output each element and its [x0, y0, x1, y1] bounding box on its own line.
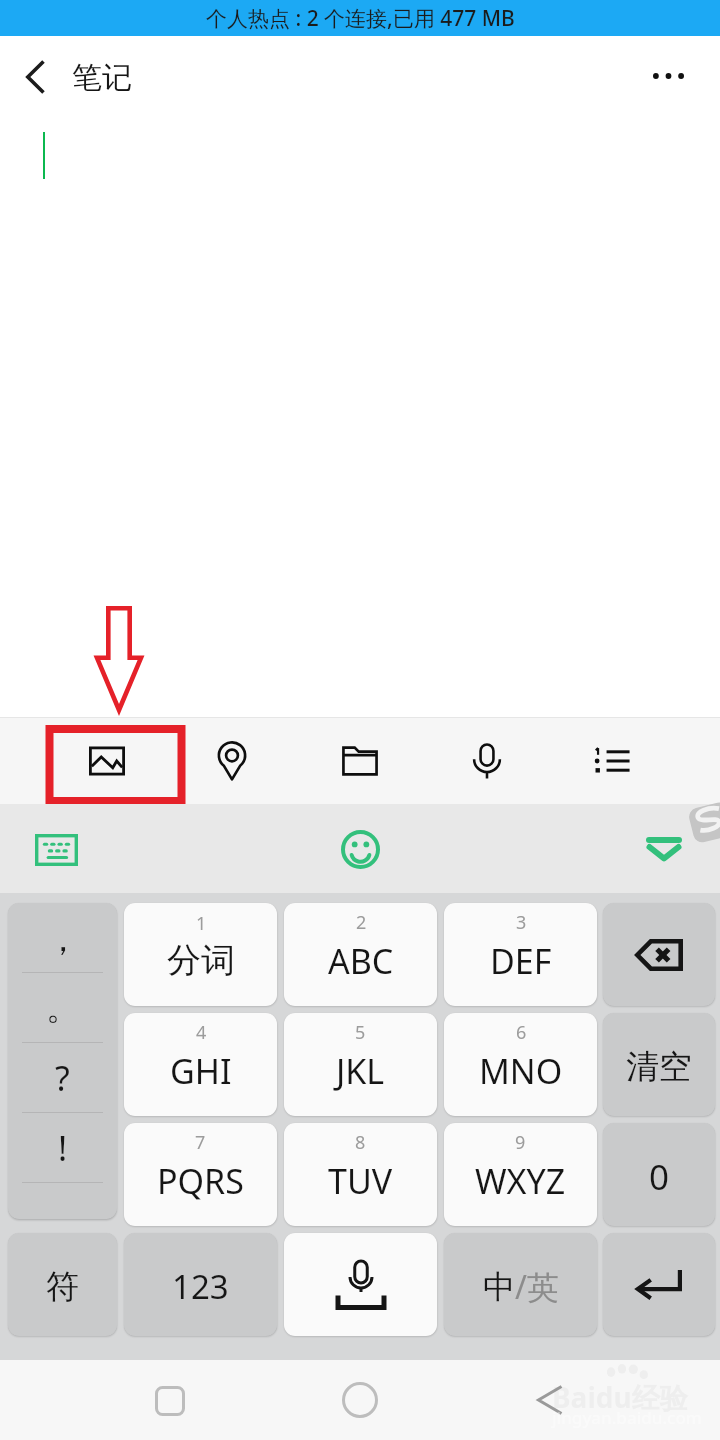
staticText: DEF — [490, 938, 552, 984]
staticText: 个人热点 : 2 个连接,已用 477 MB — [206, 4, 515, 33]
staticText: 2 — [356, 910, 367, 935]
button[interactable]: 123 — [124, 1233, 277, 1336]
button[interactable]: More options — [616, 36, 720, 117]
button[interactable]: Emoji — [310, 804, 410, 893]
button[interactable]: 9 — [444, 1123, 597, 1226]
button[interactable]: 中 — [444, 1233, 597, 1336]
staticText: 中 — [483, 1267, 515, 1307]
staticText: 7 — [195, 1130, 206, 1155]
staticText: jingyan.baidu.com — [552, 1406, 702, 1429]
staticText: 123 — [172, 1264, 229, 1309]
button[interactable]: 7 — [124, 1123, 277, 1226]
button[interactable]: Space — [284, 1233, 437, 1336]
staticText: Baidu经验 — [552, 1378, 688, 1416]
button[interactable]: Back — [491, 1360, 611, 1440]
staticText: 8 — [355, 1130, 366, 1155]
staticText: 符 — [46, 1266, 79, 1308]
staticText: /英 — [515, 1265, 559, 1309]
button[interactable]: Home — [300, 1360, 420, 1440]
staticText: 。 — [46, 986, 80, 1029]
staticText: ， — [46, 918, 80, 961]
staticText: 笔记 — [72, 59, 132, 97]
staticText: ? — [55, 1055, 70, 1101]
button[interactable]: ， — [8, 903, 117, 1219]
staticText: ! — [58, 1125, 68, 1171]
staticText: 4 — [196, 1020, 207, 1045]
button[interactable]: 6 — [444, 1013, 597, 1116]
staticText: ABC — [328, 938, 394, 984]
staticText: 5 — [355, 1020, 366, 1045]
button[interactable]: 1 — [124, 903, 277, 1006]
button[interactable]: 8 — [284, 1123, 437, 1226]
staticText: TUV — [328, 1158, 393, 1204]
button[interactable]: Location — [176, 717, 288, 804]
button[interactable]: Enter — [603, 1233, 715, 1336]
staticText: WXYZ — [475, 1158, 566, 1204]
button[interactable]: Insert image — [59, 717, 171, 804]
staticText: 清空 — [626, 1046, 692, 1088]
button[interactable]: 2 — [284, 903, 437, 1006]
button[interactable]: Bullet list — [557, 717, 669, 804]
button[interactable]: 4 — [124, 1013, 277, 1116]
staticText: 0 — [649, 1153, 670, 1201]
button[interactable]: 清空 — [603, 1013, 715, 1116]
button[interactable]: 3 — [444, 903, 597, 1006]
staticText: 1 — [196, 911, 207, 936]
button[interactable]: 符 — [8, 1233, 117, 1336]
staticText: PQRS — [157, 1158, 244, 1204]
button[interactable]: Voice input — [431, 717, 543, 804]
button[interactable]: Hide keyboard — [614, 804, 714, 893]
button[interactable]: Back — [0, 36, 70, 117]
staticText: JKL — [336, 1048, 385, 1094]
staticText: 9 — [515, 1130, 526, 1155]
staticText: 6 — [516, 1020, 527, 1045]
button[interactable]: Keyboard layout — [6, 804, 106, 893]
button[interactable]: 5 — [284, 1013, 437, 1116]
button[interactable]: Files — [304, 717, 416, 804]
button[interactable]: Backspace — [603, 903, 715, 1006]
staticText: 分词 — [167, 939, 235, 982]
button[interactable]: 0 — [603, 1123, 715, 1226]
staticText: 3 — [516, 910, 527, 935]
button[interactable]: Recents — [110, 1360, 230, 1440]
staticText: GHI — [170, 1048, 232, 1094]
staticText: MNO — [479, 1048, 563, 1094]
